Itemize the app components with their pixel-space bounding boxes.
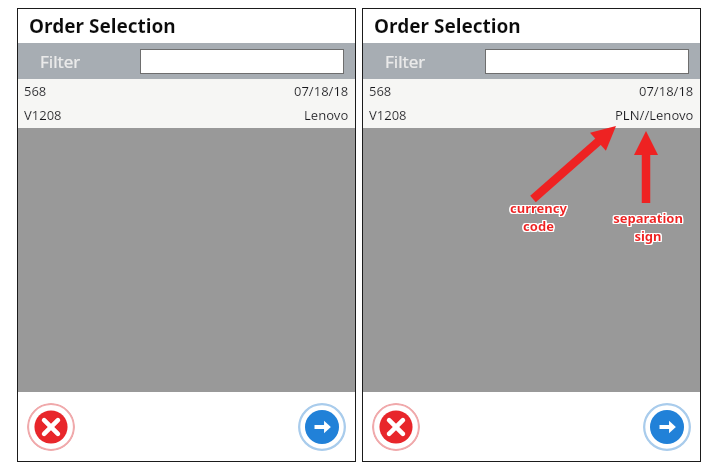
button[interactable]	[485, 49, 689, 74]
staticText: code	[524, 216, 555, 234]
button[interactable]: Next	[643, 403, 691, 451]
staticText: sign	[633, 227, 661, 245]
staticText: 568	[369, 82, 392, 100]
staticText: currency	[511, 198, 568, 216]
button[interactable]: Next	[298, 403, 346, 451]
staticText: separation	[612, 210, 682, 228]
button[interactable]: 568	[363, 79, 700, 128]
staticText: 07/18/18	[639, 82, 694, 100]
staticText: code	[524, 217, 555, 235]
staticText: Filter	[385, 50, 426, 73]
staticText: sign	[634, 228, 662, 246]
button[interactable]: Cancel	[372, 403, 420, 451]
staticText: code	[522, 218, 553, 236]
staticText: V1208	[369, 106, 407, 124]
staticText: code	[524, 218, 555, 236]
button[interactable]	[140, 49, 344, 74]
staticText: separation	[613, 209, 683, 227]
staticText: currency	[509, 199, 566, 217]
staticText: Lenovo	[304, 106, 349, 124]
staticText: sign	[634, 227, 662, 245]
staticText: separation	[613, 208, 683, 226]
staticText: 07/18/18	[294, 82, 349, 100]
staticText: 568	[24, 82, 47, 100]
staticText: separation	[612, 208, 682, 226]
staticText: currency	[510, 199, 567, 217]
staticText: code	[522, 217, 553, 235]
button[interactable]: Cancel	[27, 403, 75, 451]
staticText: V1208	[24, 106, 62, 124]
button[interactable]: 568	[18, 79, 355, 128]
staticText: code	[522, 216, 553, 234]
staticText: separation	[614, 210, 684, 228]
staticText: Order Selection	[29, 13, 176, 39]
staticText: code	[523, 218, 554, 236]
staticText: sign	[633, 226, 661, 244]
staticText: separation	[614, 208, 684, 226]
staticText: separation	[613, 210, 683, 228]
staticText: Filter	[40, 50, 81, 73]
staticText: sign	[633, 228, 661, 246]
staticText: currency	[511, 200, 568, 218]
staticText: Order Selection	[374, 13, 521, 39]
staticText: currency	[511, 199, 568, 217]
staticText: currency	[509, 200, 566, 218]
staticText: sign	[634, 226, 662, 244]
staticText: PLN//Lenovo	[615, 106, 694, 124]
staticText: code	[523, 216, 554, 234]
staticText: code	[523, 217, 554, 235]
staticText: sign	[635, 228, 663, 246]
staticText: sign	[635, 226, 663, 244]
staticText: sign	[635, 227, 663, 245]
staticText: currency	[509, 198, 566, 216]
staticText: separation	[612, 209, 682, 227]
staticText: currency	[510, 198, 567, 216]
staticText: currency	[510, 200, 567, 218]
staticText: separation	[614, 209, 684, 227]
